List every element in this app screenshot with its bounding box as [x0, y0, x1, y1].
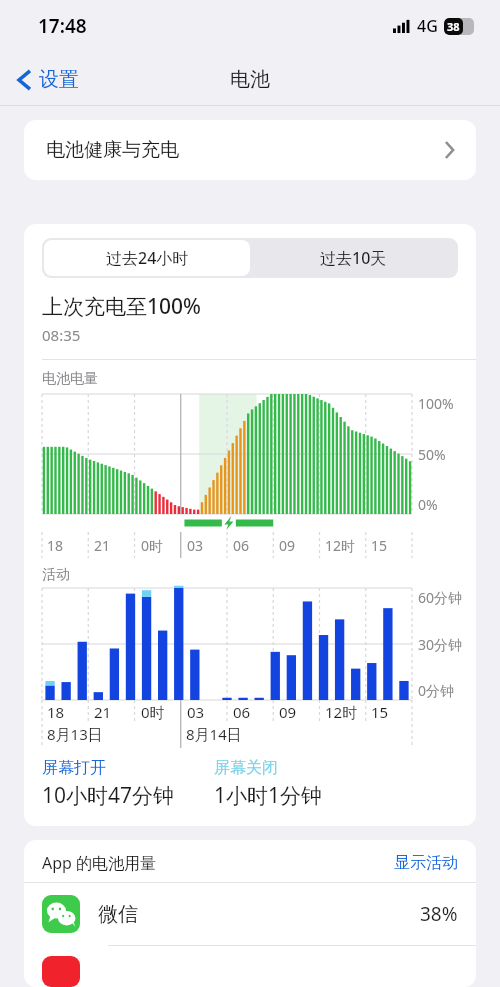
- staticText: 09: [279, 702, 297, 722]
- staticText: 09: [279, 536, 296, 555]
- staticText: 21: [94, 536, 111, 555]
- staticText: 电池健康与充电: [46, 138, 445, 162]
- staticText: 设置: [39, 67, 79, 92]
- staticText: 屏幕打开: [42, 758, 106, 778]
- staticText: 30分钟: [418, 635, 463, 654]
- staticText: 18: [47, 702, 65, 722]
- staticText: 06: [233, 536, 250, 555]
- staticText: 15: [371, 536, 388, 555]
- staticText: 03: [187, 536, 204, 555]
- staticText: 电池电量: [42, 370, 98, 388]
- staticText: 10小时47分钟: [42, 781, 175, 810]
- staticText: 17:48: [38, 13, 87, 39]
- staticText: 上次充电至100%: [42, 292, 201, 321]
- staticText: 0时: [141, 702, 165, 722]
- staticText: 1小时1分钟: [214, 781, 323, 810]
- staticText: 06: [233, 702, 251, 722]
- staticText: 活动: [42, 566, 70, 584]
- staticText: 微信: [98, 902, 420, 927]
- staticText: 12时: [325, 702, 358, 722]
- staticText: 过去10天: [320, 247, 387, 269]
- staticText: 0分钟: [418, 681, 455, 700]
- staticText: 21: [94, 702, 112, 722]
- button[interactable]: 电池健康与充电: [24, 120, 476, 180]
- staticText: 0%: [418, 495, 438, 514]
- staticText: 38: [447, 19, 460, 34]
- staticText: 电池: [230, 67, 270, 92]
- staticText: 50%: [418, 445, 446, 464]
- button[interactable]: 显示活动: [394, 853, 458, 873]
- staticText: 过去24小时: [106, 247, 189, 269]
- staticText: 38%: [420, 901, 458, 927]
- staticText: 100%: [418, 394, 454, 413]
- staticText: 0时: [141, 536, 164, 555]
- staticText: 显示活动: [394, 853, 458, 873]
- staticText: 8月14日: [186, 724, 242, 744]
- button[interactable]: [24, 946, 476, 987]
- staticText: 03: [187, 702, 205, 722]
- staticText: 15: [371, 702, 389, 722]
- other: WeChat: [42, 895, 80, 933]
- staticText: 4G: [417, 15, 438, 37]
- staticText: App 的电池用量: [42, 852, 394, 874]
- staticText: 08:35: [42, 325, 81, 345]
- button[interactable]: 设置: [14, 63, 83, 96]
- button[interactable]: WeChat: [24, 883, 476, 945]
- staticText: 12时: [325, 536, 356, 555]
- button[interactable]: 过去24小时: [44, 240, 250, 276]
- staticText: 屏幕关闭: [214, 758, 278, 778]
- staticText: 60分钟: [418, 588, 463, 607]
- staticText: 8月13日: [47, 724, 103, 744]
- staticText: 18: [47, 536, 64, 555]
- button[interactable]: 过去10天: [250, 240, 456, 276]
